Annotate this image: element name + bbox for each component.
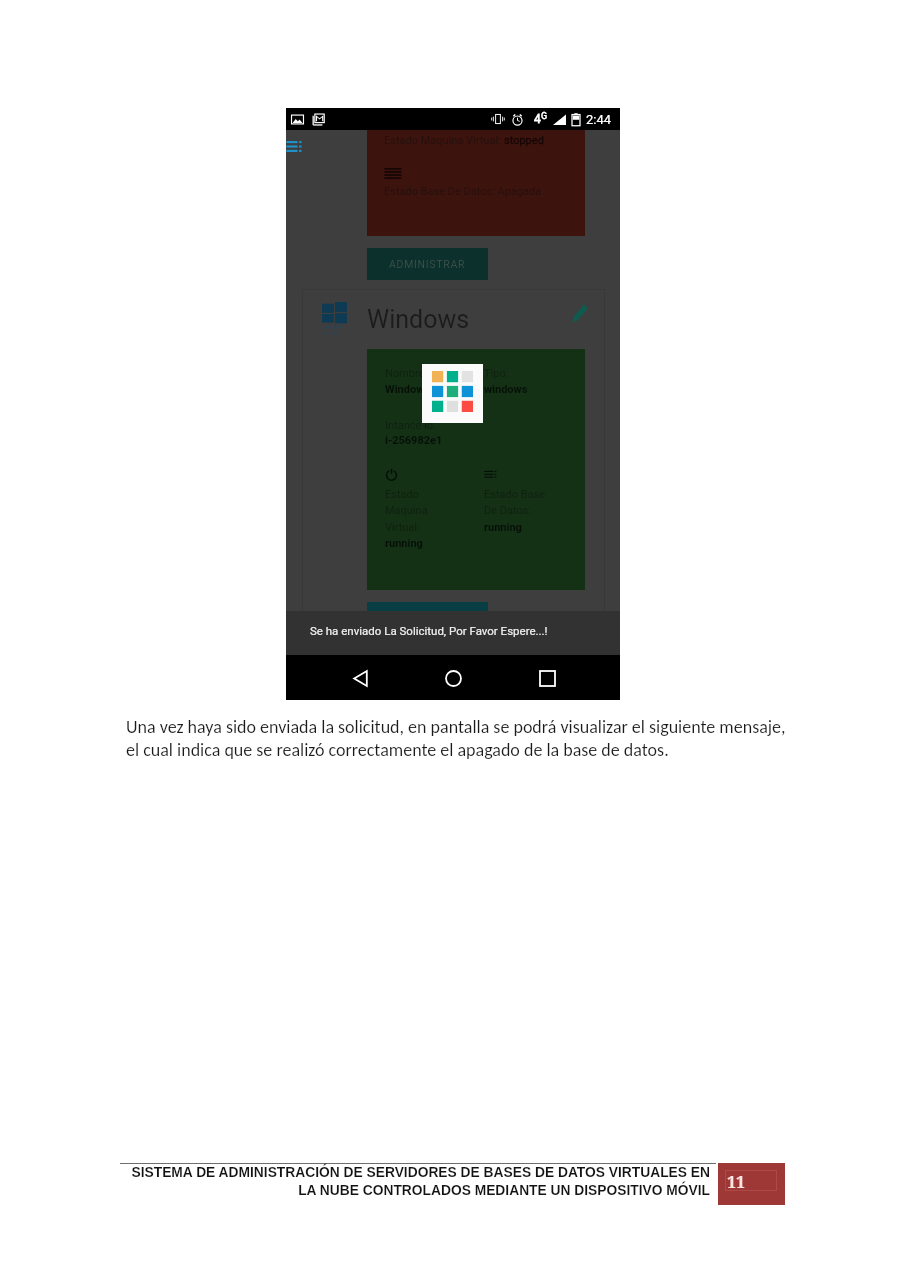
- staticText: i-256982e1: [385, 434, 443, 447]
- staticText: Windows Server: [323, 324, 344, 336]
- staticText: running: [484, 521, 522, 534]
- staticText: Windows: [367, 305, 470, 334]
- staticText: Windows: [385, 383, 430, 396]
- staticText: Intance Id:: [385, 419, 436, 432]
- staticText: Una vez haya sido enviada la solicitud, …: [126, 716, 786, 761]
- staticText: running: [385, 537, 423, 550]
- button[interactable]: ADMINISTRAR: [367, 248, 488, 280]
- staticText: 11: [727, 1171, 746, 1193]
- button[interactable]: Home: [433, 658, 473, 698]
- staticText: ADMINISTRAR: [389, 258, 466, 270]
- staticText: 2:44: [586, 112, 612, 127]
- staticText: Maquina: [385, 504, 428, 517]
- staticText: Estado Maquina Virtual:: [384, 134, 504, 147]
- staticText: SISTEMA DE ADMINISTRACIÓN DE SERVIDORES …: [110, 1165, 710, 1198]
- staticText: 4: [534, 112, 541, 126]
- staticText: Estado Base De Datos: Apagada: [384, 185, 542, 198]
- button[interactable]: Back: [340, 658, 380, 698]
- button[interactable]: Menu: [286, 140, 302, 153]
- staticText: De Datos:: [484, 504, 532, 517]
- button[interactable]: [367, 602, 488, 634]
- staticText: windows: [484, 383, 528, 396]
- staticText: Nombre:: [385, 367, 428, 380]
- staticText: stopped: [504, 134, 544, 147]
- staticText: Estado: [385, 488, 419, 501]
- staticText: Tipo:: [484, 367, 509, 380]
- staticText: Virtual:: [385, 521, 420, 534]
- staticText: Estado Base: [484, 488, 546, 501]
- staticText: Se ha enviado La Solicitud, Por Favor Es…: [310, 624, 548, 637]
- staticText: G: [541, 111, 548, 122]
- button[interactable]: Recents: [527, 658, 567, 698]
- button[interactable]: Edit: [571, 303, 589, 323]
